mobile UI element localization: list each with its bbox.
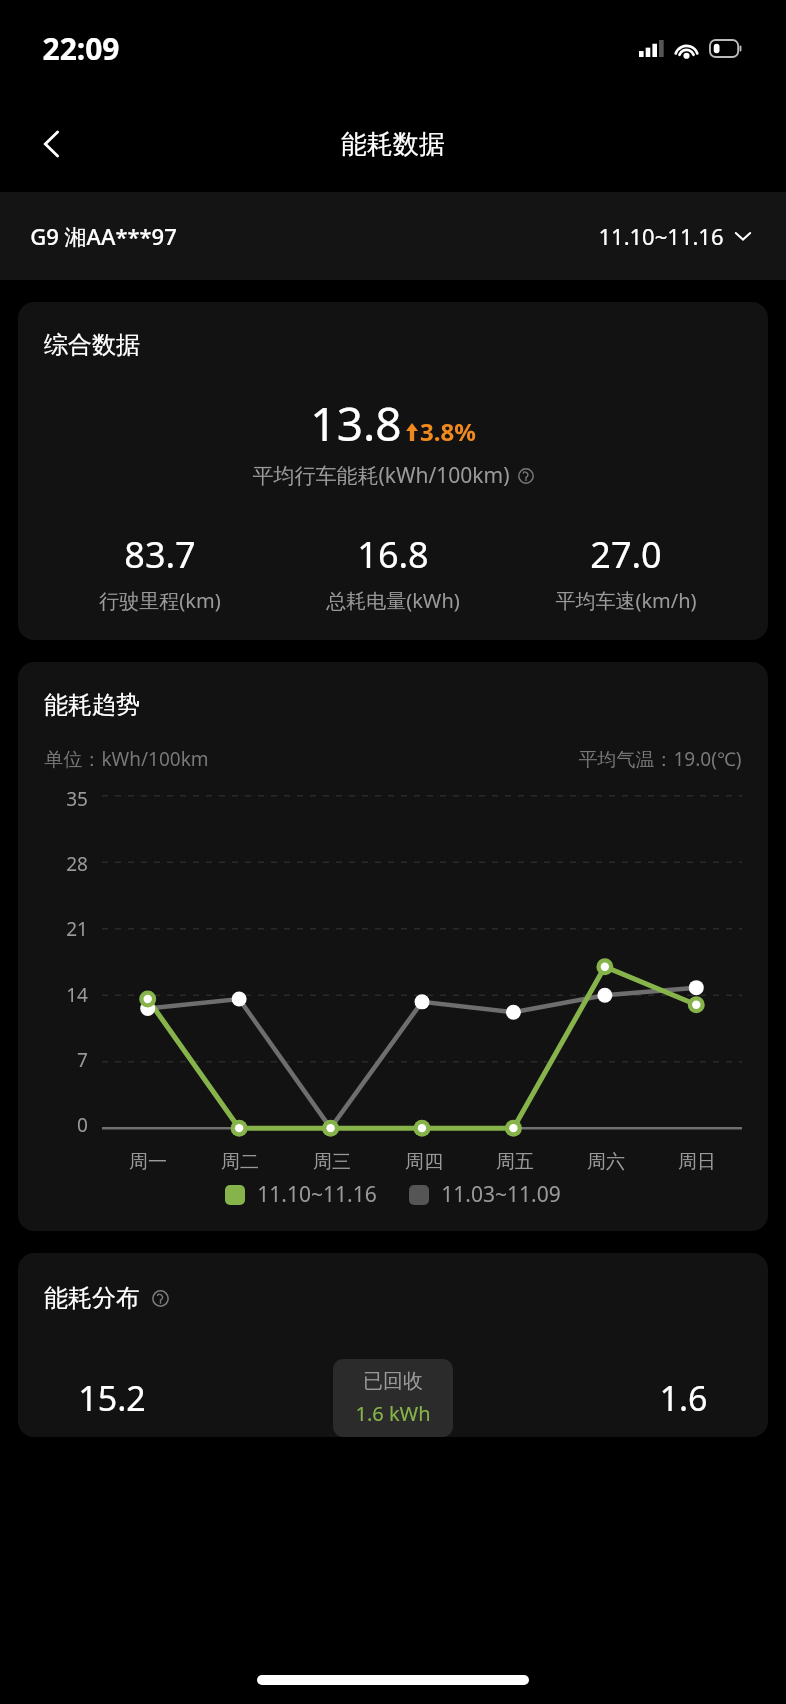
staticText: 能耗数据 [341,128,445,161]
staticText: 周五 [496,1150,534,1174]
staticText: 周三 [313,1150,351,1174]
staticText: 83.7 [124,530,196,579]
staticText: 11.10~11.16 [257,1180,377,1209]
staticText: 14 [66,982,88,1008]
staticText: 3.8% [420,415,476,448]
button[interactable]: 能耗分布 [18,1253,768,1437]
staticText: 综合数据 [44,330,140,360]
staticText: 13.8 [310,392,402,455]
staticText: 11.10~11.16 [598,221,724,251]
staticText: 16.8 [357,530,429,579]
button[interactable]: 综合数据 [18,302,768,640]
staticText: 总耗电量(kWh) [326,587,460,614]
staticText: 能耗分布 [44,1283,140,1313]
staticText: 平均车速(km/h) [555,587,697,614]
staticText: 周四 [405,1150,443,1174]
staticText: 15.2 [78,1375,146,1421]
staticText: 35 [66,786,88,812]
staticText: 1.6 [659,1375,708,1421]
staticText: 已回收 [363,1369,423,1394]
staticText: 能耗趋势 [44,690,140,720]
staticText: 周六 [587,1150,625,1174]
staticText: 平均气温：19.0(℃) [578,746,742,772]
staticText: 1.6 kWh [355,1400,431,1427]
button[interactable]: 11.03~11.09 [409,1180,561,1209]
staticText: 周一 [129,1150,167,1174]
staticText: 单位：kWh/100km [44,746,209,772]
staticText: 22:09 [42,28,120,69]
button[interactable]: 11.10~11.16 [225,1180,377,1209]
staticText: 21 [66,916,88,942]
staticText: 0 [77,1112,88,1138]
staticText: 27.0 [590,530,662,579]
button[interactable]: Back [20,112,84,176]
staticText: G9 湘AA***97 [30,221,177,251]
staticText: 行驶里程(km) [99,587,221,614]
staticText: 平均行车能耗(kWh/100km) [252,461,510,490]
button[interactable]: 11.10~11.16 [594,217,756,255]
button[interactable]: 能耗趋势 [18,662,768,1231]
staticText: 周二 [221,1150,259,1174]
staticText: 7 [77,1047,88,1073]
staticText: 周日 [678,1150,716,1174]
staticText: 28 [66,851,88,877]
staticText: 11.03~11.09 [441,1180,561,1209]
